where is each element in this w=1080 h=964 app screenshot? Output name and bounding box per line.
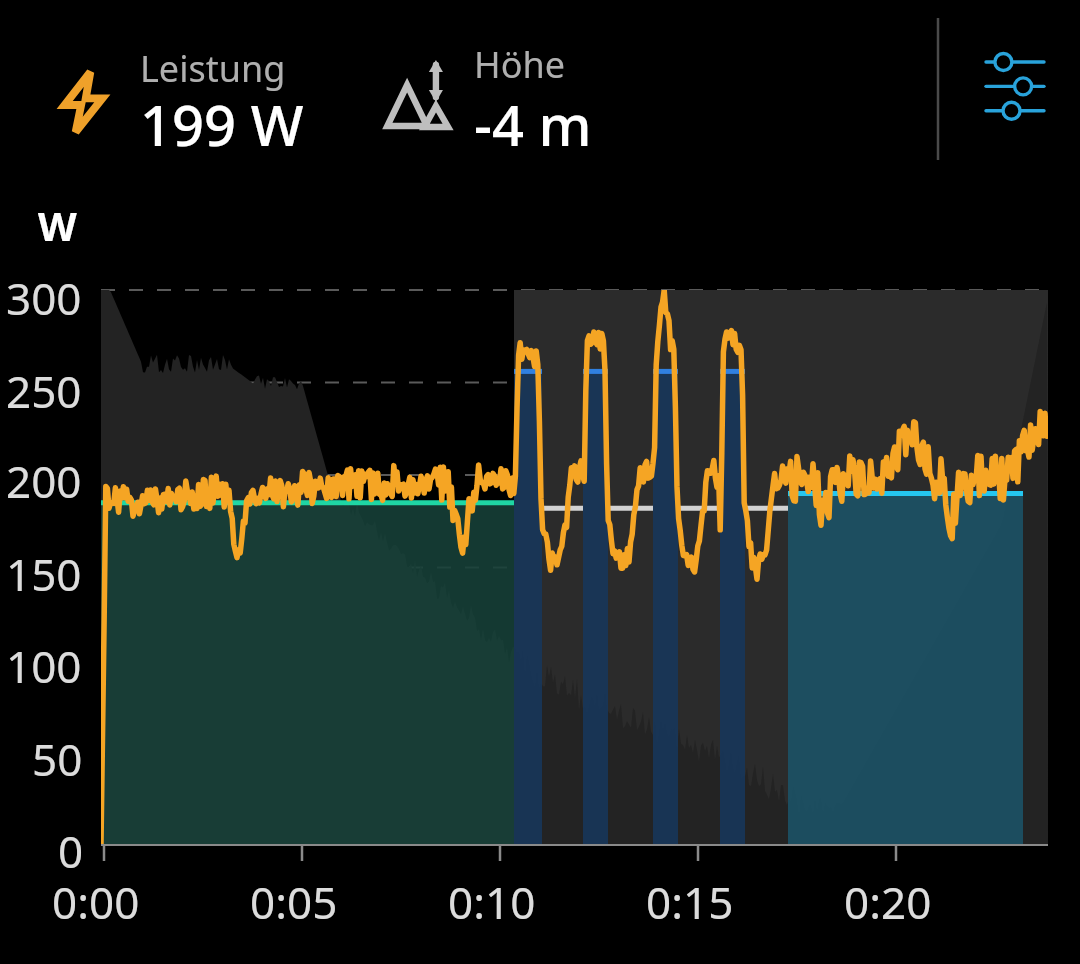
staticText: 50 — [32, 729, 83, 789]
staticText: Leistung — [140, 44, 286, 93]
staticText: W — [38, 198, 77, 252]
staticText: 199 W — [140, 86, 304, 162]
staticText: 0:05 — [250, 872, 338, 932]
staticText: -4 m — [474, 86, 592, 162]
staticText: 200 — [6, 451, 82, 511]
button[interactable] — [378, 36, 678, 152]
button[interactable] — [40, 36, 360, 152]
button[interactable]: Diagrammeinstellungen — [960, 34, 1070, 144]
staticText: 0:20 — [844, 872, 932, 932]
staticText: 0:15 — [646, 872, 734, 932]
button[interactable]: Leistungsdiagramm — [0, 180, 1080, 880]
staticText: 100 — [6, 636, 82, 696]
staticText: 0:10 — [448, 872, 536, 932]
staticText: 150 — [6, 544, 82, 604]
staticText: 0 — [58, 821, 84, 881]
staticText: 250 — [6, 361, 82, 421]
staticText: 0:00 — [52, 872, 140, 932]
staticText: 300 — [6, 268, 82, 328]
staticText: Höhe — [474, 40, 566, 89]
